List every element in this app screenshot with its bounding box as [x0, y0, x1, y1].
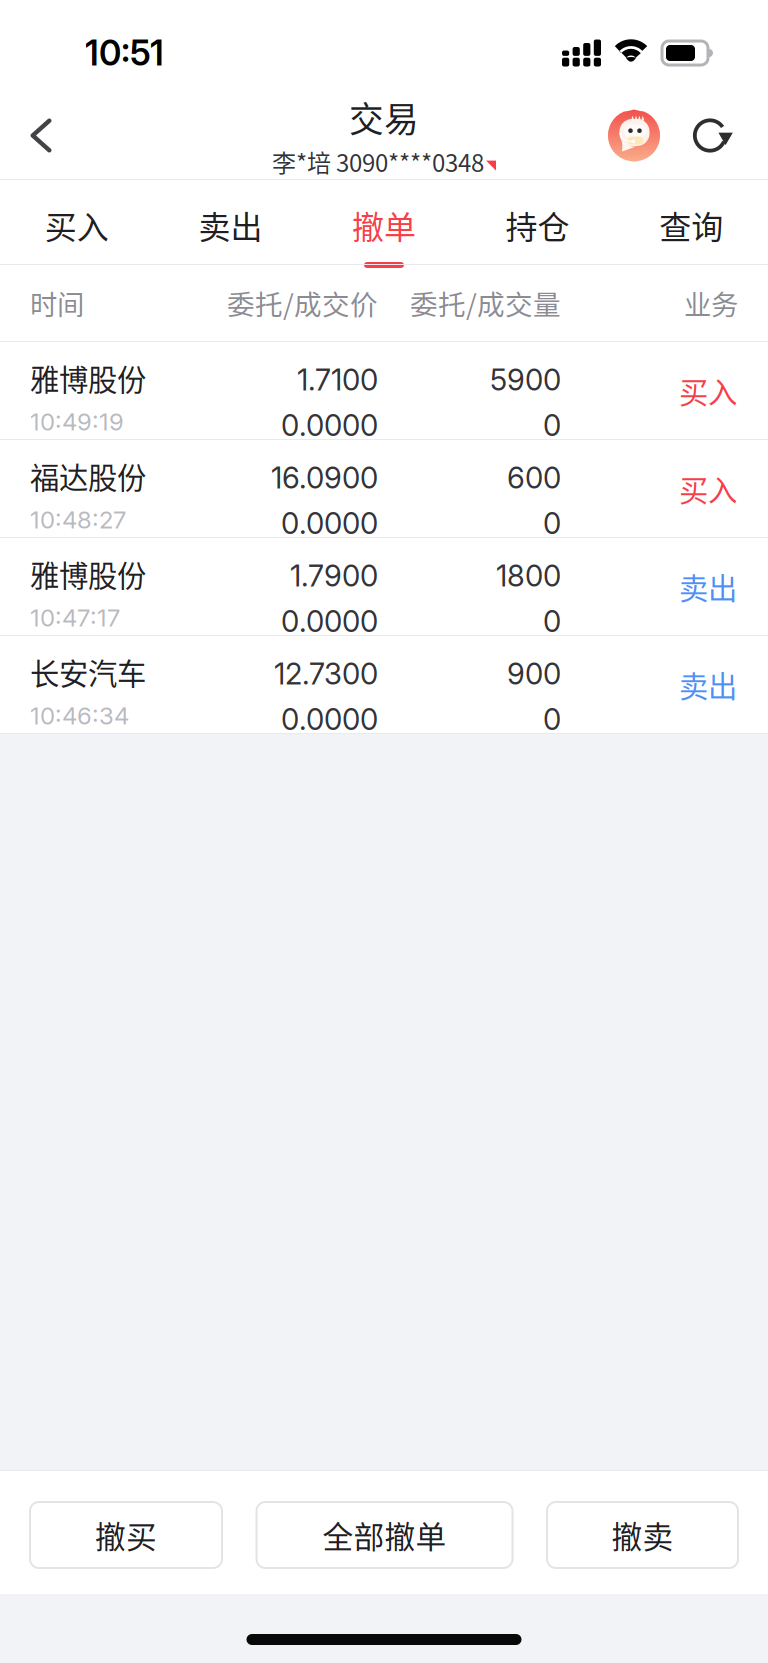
staticText: 10:49:19 [30, 407, 124, 436]
staticText: 1.7900 [290, 558, 378, 593]
staticText: 委托/成交量 [410, 283, 561, 323]
button[interactable]: Back [0, 92, 82, 179]
button[interactable]: 撤单 [307, 180, 461, 264]
staticText: 0.0000 [281, 701, 378, 737]
button[interactable]: Customer service [592, 92, 676, 179]
staticText: 雅博股份 [30, 357, 146, 399]
staticText: 10:47:17 [30, 603, 120, 632]
staticText: 持仓 [506, 202, 570, 248]
staticText: 撤单 [352, 202, 416, 248]
staticText: 0 [543, 505, 561, 541]
staticText: 李*培 3090****0348 [272, 144, 484, 179]
staticText: 1.7100 [297, 362, 378, 397]
staticText: 委托/成交价 [227, 283, 378, 323]
staticText: 0.0000 [281, 407, 378, 443]
staticText: 10:46:34 [30, 701, 129, 730]
button[interactable]: Refresh [676, 92, 750, 179]
staticText: 0 [543, 603, 561, 639]
staticText: 16.0900 [271, 460, 378, 495]
staticText: 卖出 [198, 202, 262, 248]
button[interactable]: 雅博股份 [0, 342, 768, 440]
button[interactable]: 撤买 [30, 1502, 222, 1568]
button[interactable]: 长安汽车 [0, 636, 768, 734]
staticText: 全部撤单 [322, 1513, 446, 1557]
staticText: 1800 [496, 558, 561, 593]
staticText: 0 [543, 701, 561, 737]
staticText: 查询 [659, 202, 723, 248]
staticText: 10:51 [85, 32, 164, 74]
staticText: 5900 [490, 362, 561, 397]
staticText: 卖出 [679, 565, 737, 608]
staticText: 0.0000 [281, 603, 378, 639]
button[interactable]: 持仓 [461, 180, 614, 264]
staticText: 撤买 [95, 1513, 157, 1557]
button[interactable]: 查询 [614, 180, 768, 264]
staticText: 0 [543, 407, 561, 443]
staticText: 交易 [349, 92, 419, 142]
staticText: 业务 [684, 283, 738, 323]
staticText: 买入 [45, 202, 109, 248]
staticText: 900 [507, 656, 561, 691]
staticText: 0.0000 [281, 505, 378, 541]
staticText: 时间 [30, 283, 84, 323]
staticText: 福达股份 [30, 455, 146, 497]
staticText: 卖出 [679, 663, 737, 706]
staticText: 12.7300 [274, 656, 378, 691]
staticText: 买入 [679, 467, 737, 510]
staticText: 买入 [679, 369, 737, 412]
button[interactable]: 雅博股份 [0, 538, 768, 636]
button[interactable]: 全部撤单 [256, 1502, 512, 1568]
button[interactable]: 卖出 [154, 180, 307, 264]
staticText: 雅博股份 [30, 553, 146, 595]
button[interactable]: 买入 [0, 180, 154, 264]
staticText: 10:48:27 [30, 505, 126, 534]
staticText: 600 [507, 460, 561, 495]
button[interactable]: 福达股份 [0, 440, 768, 538]
staticText: 撤卖 [611, 1513, 673, 1557]
button[interactable]: 撤卖 [547, 1502, 738, 1568]
staticText: 长安汽车 [30, 651, 146, 693]
